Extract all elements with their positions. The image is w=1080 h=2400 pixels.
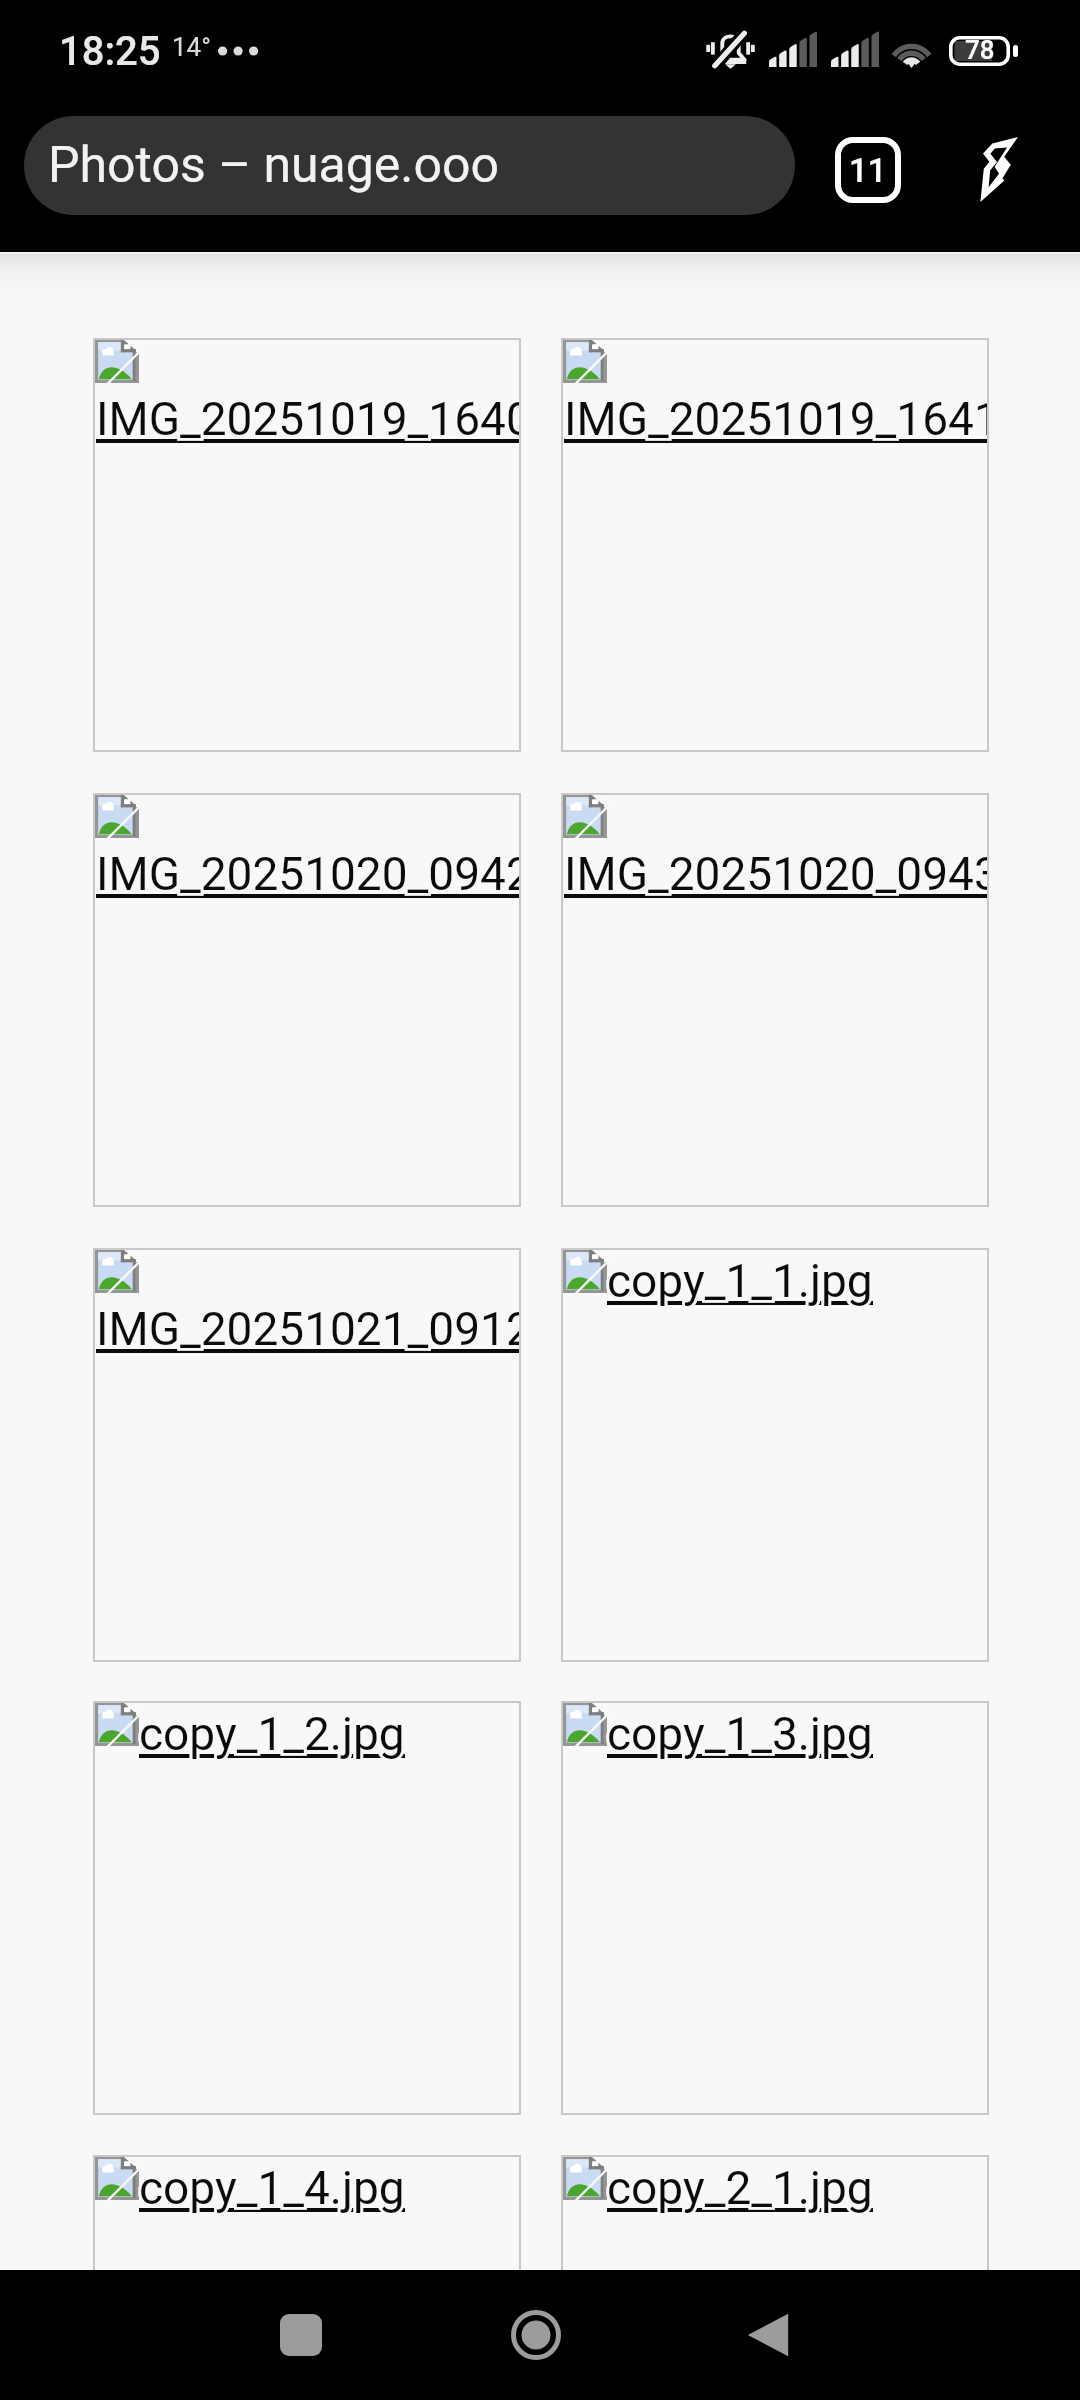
button[interactable]: Back	[703, 2270, 833, 2400]
button[interactable]: Tabs	[812, 114, 924, 226]
button[interactable]: Recent apps	[236, 2270, 366, 2400]
staticText: IMG_20251021_0912.jpg	[96, 1302, 521, 1356]
staticText: IMG_20251020_0943.jpg	[564, 847, 989, 901]
button[interactable]: copy_1_3.jpg	[561, 1701, 989, 2115]
button[interactable]: copy_1_4.jpg	[93, 2155, 521, 2400]
staticText: 18:25	[59, 28, 161, 75]
button[interactable]: IMG_20251019_164059.jpg	[93, 338, 521, 752]
button[interactable]: IMG_20251020_0943.jpg	[561, 793, 989, 1207]
button[interactable]: copy_1_1.jpg	[561, 1248, 989, 1662]
staticText: IMG_20251021_0912.jpg	[96, 1302, 521, 1356]
staticText: copy_1_2.jpg	[139, 1707, 405, 1761]
staticText: copy_1_4.jpg	[139, 2161, 405, 2215]
button[interactable]: IMG_20251020_0942.jpg	[93, 793, 521, 1207]
staticText: 14°	[172, 32, 211, 62]
staticText: 11	[849, 151, 887, 190]
staticText: copy_1_1.jpg	[607, 1254, 873, 1308]
staticText: copy_1_3.jpg	[607, 1707, 873, 1761]
staticText: IMG_20251019_164103.jpg	[564, 392, 989, 446]
staticText: copy_1_2.jpg	[139, 1707, 405, 1761]
staticText: copy_2_1.jpg	[607, 2161, 873, 2215]
staticText: 78	[965, 35, 995, 65]
staticText: Photos – nuage.ooo	[48, 136, 500, 195]
button[interactable]: copy_1_2.jpg	[93, 1701, 521, 2115]
staticText: copy_1_4.jpg	[139, 2161, 405, 2215]
button[interactable]: Photos – nuage.ooo	[24, 116, 795, 215]
button[interactable]: Turbo mode	[942, 114, 1054, 226]
staticText: IMG_20251019_164059.jpg	[96, 392, 521, 446]
button[interactable]: copy_2_1.jpg	[561, 2155, 989, 2400]
staticText: IMG_20251020_0943.jpg	[564, 847, 989, 901]
staticText: copy_1_3.jpg	[607, 1707, 873, 1761]
button[interactable]: IMG_20251021_0912.jpg	[93, 1248, 521, 1662]
staticText: IMG_20251019_164103.jpg	[564, 392, 989, 446]
staticText: IMG_20251020_0942.jpg	[96, 847, 521, 901]
staticText: IMG_20251019_164059.jpg	[96, 392, 521, 446]
staticText: IMG_20251020_0942.jpg	[96, 847, 521, 901]
staticText: copy_1_1.jpg	[607, 1254, 873, 1308]
button[interactable]: Home	[471, 2270, 601, 2400]
staticText: copy_2_1.jpg	[607, 2161, 873, 2215]
button[interactable]: IMG_20251019_164103.jpg	[561, 338, 989, 752]
